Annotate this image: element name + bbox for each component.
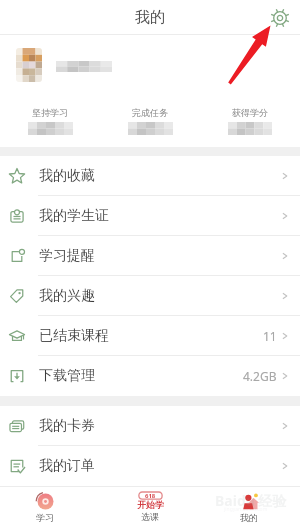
staticText: 618 <box>145 492 156 500</box>
button[interactable]: 坚持学习 <box>0 95 100 147</box>
staticText: 选课 <box>141 511 159 522</box>
staticText: 11 <box>263 328 277 344</box>
button[interactable]: 下载管理 <box>0 356 300 396</box>
staticText: 我的兴趣 <box>39 287 95 305</box>
staticText: 完成任务 <box>132 107 168 118</box>
button[interactable]: 我的收藏 <box>0 156 300 196</box>
staticText: 下载管理 <box>39 367 95 385</box>
staticText: 我的收藏 <box>39 167 95 185</box>
staticText: 我的 <box>135 8 165 27</box>
button[interactable]: 我的 <box>200 487 300 523</box>
button[interactable]: 学习提醒 <box>0 236 300 276</box>
staticText: 开始学 <box>137 499 164 509</box>
button[interactable]: Settings <box>268 6 292 30</box>
staticText: 学习 <box>36 512 54 523</box>
staticText: 我的订单 <box>39 457 95 475</box>
button[interactable]: 学习 <box>0 487 100 523</box>
staticText: jingyan.baidu.com <box>224 506 268 513</box>
button[interactable]: 我的学生证 <box>0 196 300 236</box>
button[interactable]: 618 <box>100 487 200 523</box>
staticText: 已结束课程 <box>39 327 109 345</box>
staticText: Baidu 经验 <box>215 491 287 510</box>
staticText: 4.2GB <box>243 368 277 384</box>
staticText: 坚持学习 <box>32 107 68 118</box>
staticText: 学习提醒 <box>39 247 95 265</box>
staticText: 我的 <box>240 512 258 523</box>
button[interactable]: 已结束课程 <box>0 316 300 356</box>
button[interactable]: 获得学分 <box>200 95 300 147</box>
button[interactable]: 我的卡券 <box>0 406 300 446</box>
button[interactable] <box>0 35 300 95</box>
staticText: 我的卡券 <box>39 417 95 435</box>
staticText: 我的学生证 <box>39 207 109 225</box>
button[interactable]: 我的订单 <box>0 446 300 486</box>
button[interactable]: 完成任务 <box>100 95 200 147</box>
staticText: 获得学分 <box>232 107 268 118</box>
button[interactable]: 我的兴趣 <box>0 276 300 316</box>
